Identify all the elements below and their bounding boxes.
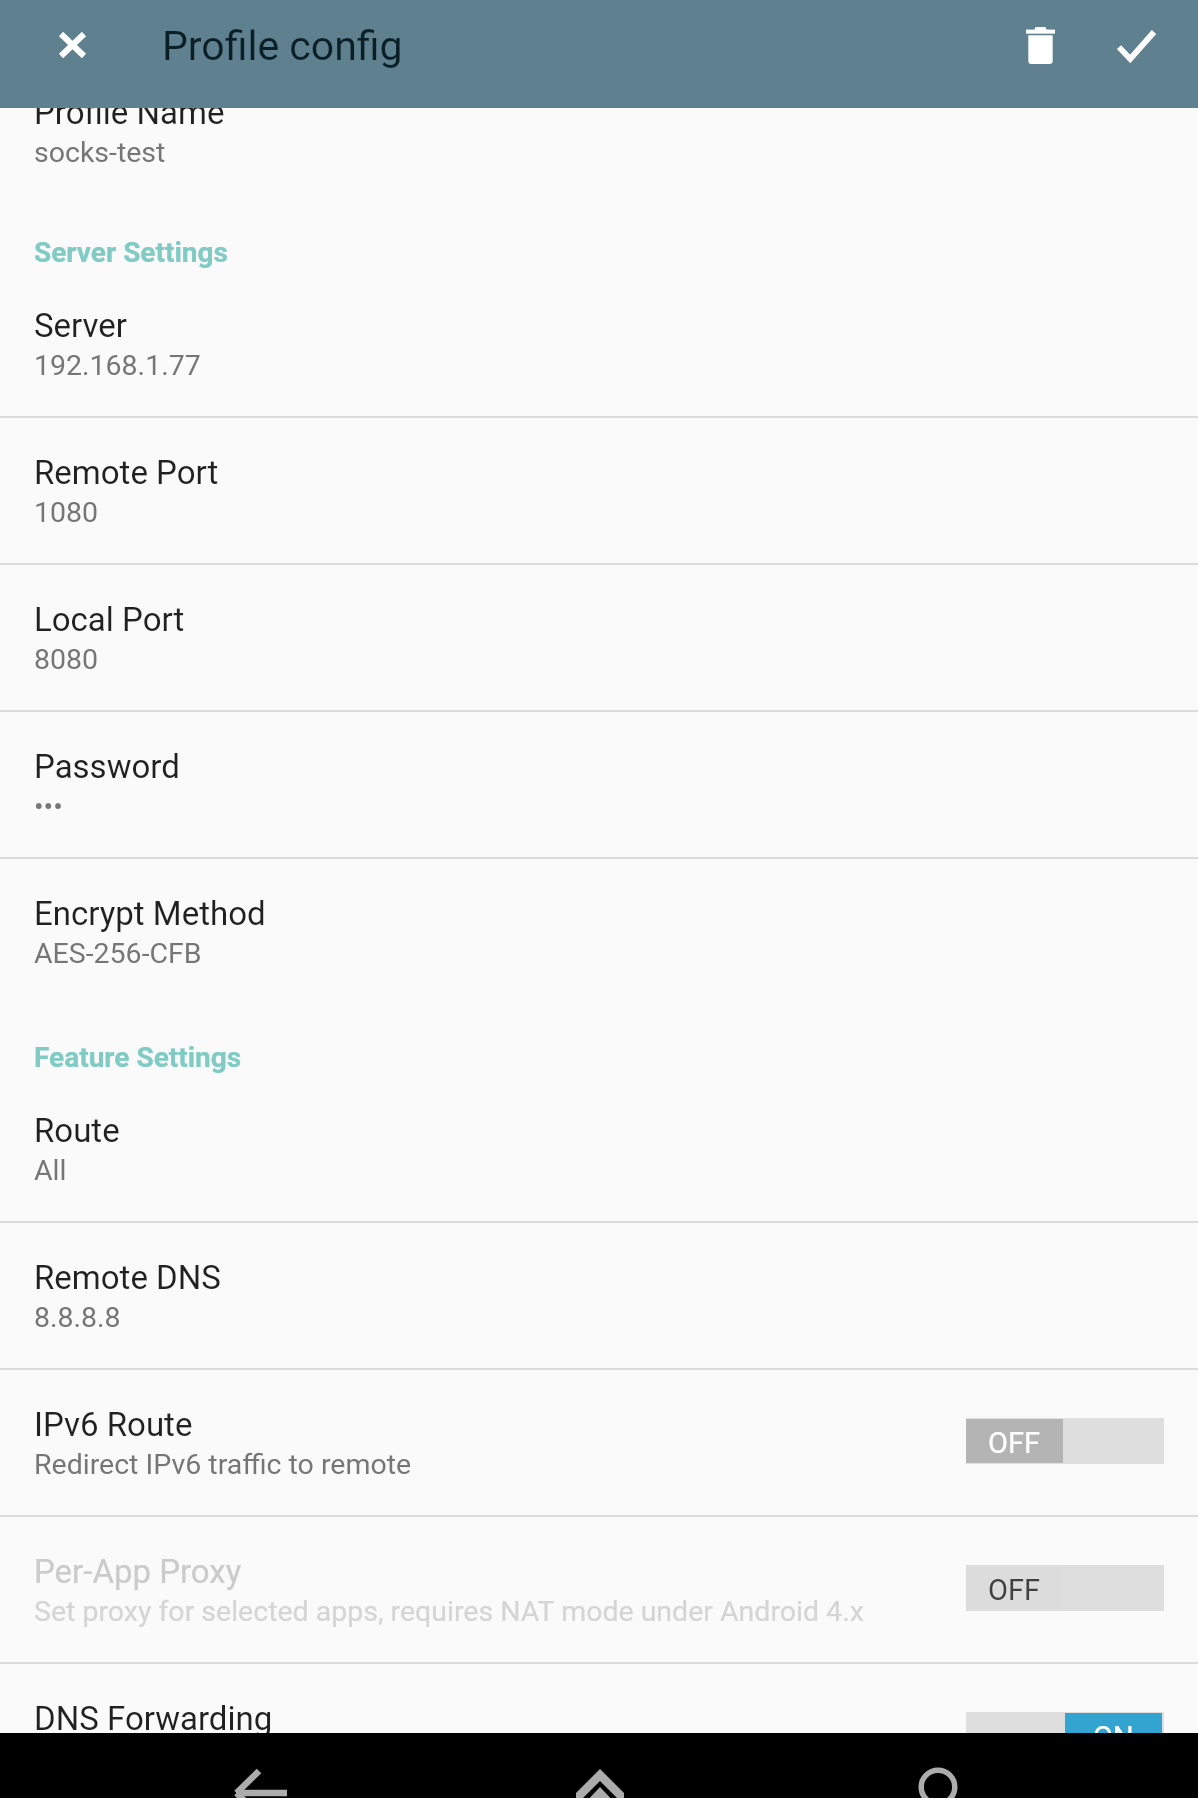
staticText: socks-test (34, 136, 166, 169)
staticText: Route (34, 1111, 120, 1150)
button[interactable]: Close (18, 0, 126, 99)
staticText: ••• (34, 790, 63, 823)
staticText: Profile Name (34, 93, 225, 132)
button[interactable]: Remote Port (0, 418, 1198, 565)
staticText: Remote Port (34, 453, 219, 492)
staticText: Profile config (162, 22, 403, 70)
staticText: AES-256-CFB (34, 937, 202, 970)
staticText: OFF (988, 1426, 1041, 1460)
button[interactable]: Home (540, 1745, 660, 1798)
button[interactable]: Per-App Proxy (0, 1517, 1198, 1664)
staticText: Local Port (34, 600, 185, 639)
staticText: Feature Settings (34, 1041, 242, 1074)
staticText: ON (1093, 1720, 1134, 1754)
staticText: Set proxy for selected apps, requires NA… (34, 1595, 864, 1628)
button[interactable]: Remote DNS (0, 1223, 1198, 1370)
staticText: Encrypt Method (34, 894, 266, 933)
button[interactable]: Recent apps (878, 1745, 998, 1798)
button[interactable]: Server (0, 271, 1198, 418)
staticText: 8.8.8.8 (34, 1301, 121, 1334)
staticText: 192.168.1.77 (34, 349, 201, 382)
button[interactable]: Save (1082, 0, 1190, 99)
staticText: Redirect IPv6 traffic to remote (34, 1448, 412, 1481)
button[interactable]: Off (966, 1565, 1164, 1611)
button[interactable]: Password (0, 712, 1198, 859)
button[interactable]: Local Port (0, 565, 1198, 712)
staticText: Forward DNS queries (34, 1742, 302, 1775)
staticText: DNS Forwarding (34, 1699, 273, 1738)
button[interactable]: On (966, 1712, 1164, 1758)
button[interactable]: IPv6 Route (0, 1370, 1198, 1517)
staticText: 8080 (34, 643, 99, 676)
button[interactable]: Back (201, 1745, 321, 1798)
button[interactable]: Encrypt Method (0, 859, 1198, 1006)
staticText: OFF (988, 1573, 1041, 1607)
button[interactable]: Delete (986, 0, 1094, 99)
staticText: Server (34, 306, 128, 345)
button[interactable]: Route (0, 1076, 1198, 1223)
staticText: Per-App Proxy (34, 1552, 242, 1591)
staticText: Remote DNS (34, 1258, 221, 1297)
staticText: IPv6 Route (34, 1405, 193, 1444)
staticText: Password (34, 747, 180, 786)
staticText: All (34, 1154, 67, 1187)
staticText: Server Settings (34, 236, 228, 269)
button[interactable]: Off (966, 1418, 1164, 1464)
staticText: 1080 (34, 496, 99, 529)
button[interactable]: DNS Forwarding (0, 1664, 1198, 1798)
